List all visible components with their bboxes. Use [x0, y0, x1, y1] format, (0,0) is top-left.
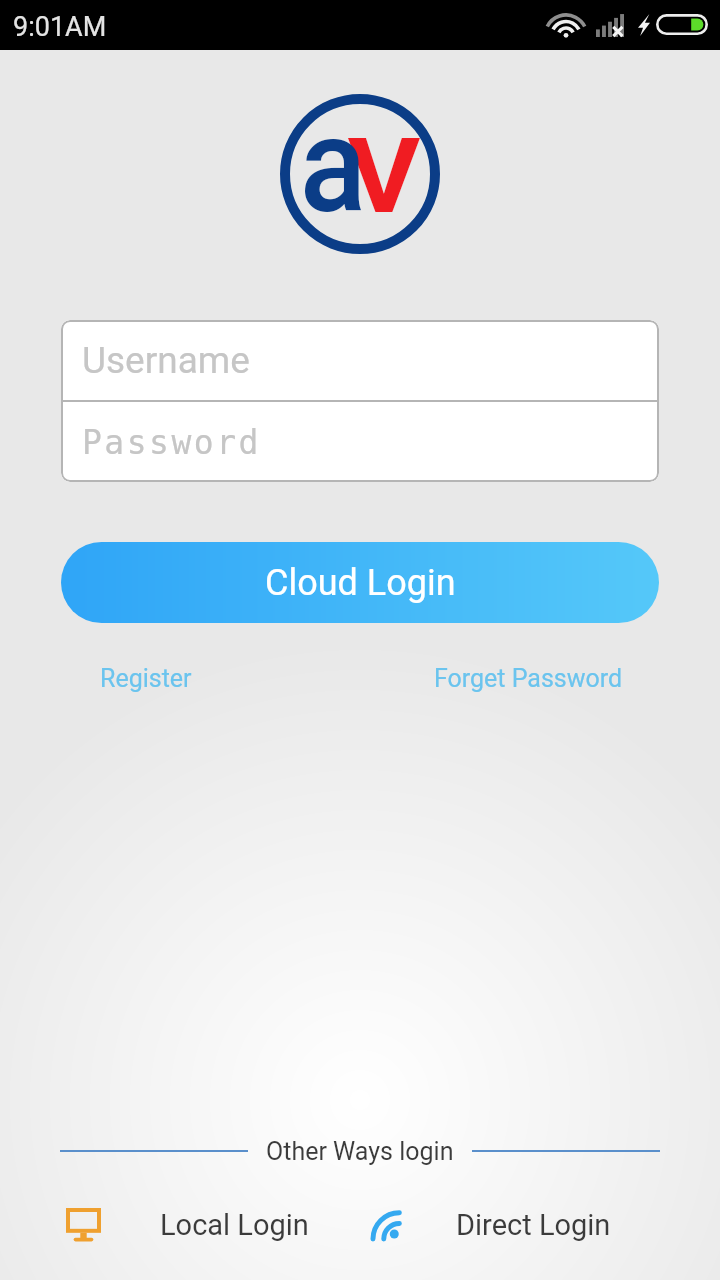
staticText: 9:01AM: [13, 11, 107, 43]
button[interactable]: Password: [61, 402, 659, 482]
button[interactable]: Cloud Login: [61, 542, 659, 623]
staticText: Other Ways login: [266, 1137, 454, 1166]
staticText: Username: [82, 339, 250, 382]
button[interactable]: Forget Password: [404, 656, 653, 701]
staticText: Password: [82, 423, 261, 461]
staticText: Local Login: [160, 1208, 309, 1242]
staticText: V: [348, 116, 420, 238]
button[interactable]: Register: [70, 656, 222, 701]
other: Local Login: [66, 1208, 101, 1242]
button[interactable]: Local Login: [60, 1196, 309, 1254]
button[interactable]: Username: [61, 320, 659, 400]
staticText: Cloud Login: [265, 562, 456, 604]
staticText: Register: [100, 664, 192, 693]
other: Direct Login: [368, 1210, 400, 1240]
staticText: Forget Password: [434, 664, 623, 693]
button[interactable]: Direct Login: [360, 1196, 611, 1254]
staticText: a: [300, 88, 367, 244]
staticText: Direct Login: [456, 1208, 611, 1242]
